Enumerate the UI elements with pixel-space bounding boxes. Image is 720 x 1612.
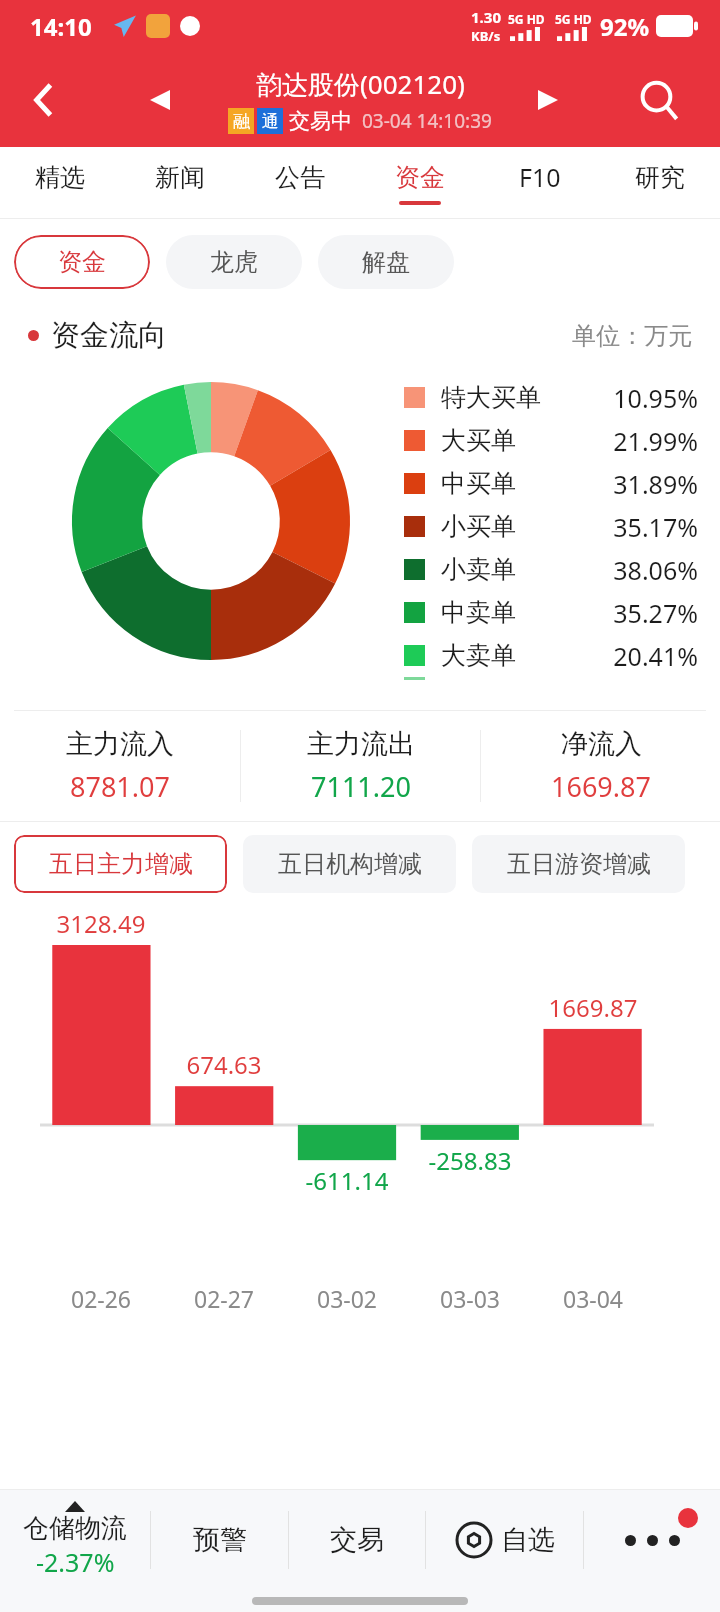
- staticText: 资金: [58, 247, 106, 277]
- staticText: 7111.20: [311, 768, 411, 805]
- button[interactable]: 特大卖单: [404, 677, 698, 680]
- staticText: 中卖单: [441, 597, 576, 628]
- staticText: 31.89%: [576, 467, 698, 501]
- staticText: 03-04: [518, 1283, 668, 1314]
- button[interactable]: 解盘: [318, 235, 454, 289]
- staticText: 1669.87: [551, 768, 651, 805]
- button[interactable]: 大卖单: [404, 634, 698, 677]
- staticText: 特大买单: [441, 382, 576, 413]
- staticText: 21.99%: [576, 424, 698, 458]
- staticText: 35.17%: [576, 510, 698, 544]
- staticText: 1.30: [471, 7, 501, 27]
- button[interactable]: 五日主力增减: [14, 835, 227, 893]
- button[interactable]: 自选: [426, 1490, 583, 1590]
- button[interactable]: 资金: [14, 235, 150, 289]
- staticText: 主力流出: [307, 727, 415, 761]
- button[interactable]: More: [584, 1490, 720, 1590]
- staticText: 20.41%: [576, 639, 698, 673]
- staticText: 大卖单: [441, 640, 576, 671]
- button[interactable]: 五日机构增减: [243, 835, 456, 893]
- button[interactable]: 五日游资增减: [472, 835, 685, 893]
- staticText: 03-02: [272, 1283, 422, 1314]
- button[interactable]: 新闻: [120, 147, 240, 219]
- staticText: 交易: [330, 1523, 384, 1557]
- staticText: 674.63: [149, 1048, 299, 1081]
- staticText: 03-04 14:10:39: [362, 108, 492, 134]
- button[interactable]: 中卖单: [404, 591, 698, 634]
- staticText: -611.14: [272, 1164, 422, 1197]
- staticText: 92%: [600, 10, 650, 43]
- staticText: 解盘: [362, 247, 410, 277]
- staticText: 主力流入: [66, 727, 174, 761]
- button[interactable]: 主力流出: [241, 711, 480, 821]
- staticText: 38.06%: [576, 553, 698, 587]
- staticText: 融: [233, 111, 250, 132]
- staticText: 五日机构增减: [278, 849, 422, 879]
- staticText: 35.27%: [576, 596, 698, 630]
- staticText: 五日游资增减: [507, 849, 651, 879]
- staticText: 韵达股份(002120): [256, 66, 465, 102]
- staticText: 8781.07: [70, 768, 170, 805]
- button[interactable]: Back: [30, 85, 60, 115]
- staticText: 五日主力增减: [49, 849, 193, 879]
- button[interactable]: 研究: [600, 147, 720, 219]
- button[interactable]: Next stock: [538, 90, 558, 110]
- staticText: 03-03: [395, 1283, 545, 1314]
- button[interactable]: 龙虎: [166, 235, 302, 289]
- button[interactable]: 中买单: [404, 462, 698, 505]
- staticText: 5G HD: [508, 11, 545, 27]
- button[interactable]: Previous stock: [150, 90, 170, 110]
- button[interactable]: Search: [638, 79, 680, 121]
- staticText: 3128.49: [26, 907, 176, 940]
- button[interactable]: 资金: [360, 147, 480, 219]
- button[interactable]: 主力流入: [0, 711, 240, 821]
- staticText: 10.95%: [576, 381, 698, 415]
- button[interactable]: 特大买单: [404, 376, 698, 419]
- button[interactable]: 交易: [289, 1490, 425, 1590]
- staticText: 龙虎: [210, 247, 258, 277]
- staticText: 研究: [635, 162, 685, 193]
- staticText: 02-27: [149, 1283, 299, 1314]
- staticText: 净流入: [561, 727, 642, 761]
- staticText: 14:10: [30, 10, 92, 43]
- staticText: 中买单: [441, 468, 576, 499]
- staticText: -2.37%: [36, 1545, 115, 1579]
- button[interactable]: 净流入: [481, 711, 720, 821]
- staticText: 仓储物流: [23, 1512, 127, 1545]
- button[interactable]: 公告: [240, 147, 360, 219]
- button[interactable]: 小卖单: [404, 548, 698, 591]
- button[interactable]: 小买单: [404, 505, 698, 548]
- staticText: 通: [262, 111, 279, 132]
- staticText: KB/s: [471, 27, 501, 45]
- button[interactable]: 预警: [151, 1490, 288, 1590]
- staticText: 小买单: [441, 511, 576, 542]
- staticText: 单位：万元: [572, 321, 692, 351]
- staticText: F10: [519, 160, 561, 194]
- button[interactable]: 精选: [0, 147, 120, 219]
- staticText: 资金: [395, 162, 445, 193]
- button[interactable]: 大买单: [404, 419, 698, 462]
- staticText: 精选: [35, 162, 85, 193]
- staticText: 1669.87: [518, 991, 668, 1024]
- staticText: -258.83: [395, 1144, 545, 1177]
- button[interactable]: 仓储物流: [0, 1490, 150, 1590]
- staticText: 资金流向: [51, 317, 167, 354]
- staticText: 预警: [193, 1523, 247, 1557]
- staticText: 自选: [501, 1523, 555, 1557]
- staticText: 大买单: [441, 425, 576, 456]
- staticText: 5G HD: [555, 11, 592, 27]
- staticText: 02-26: [26, 1283, 176, 1314]
- staticText: 新闻: [155, 162, 205, 193]
- staticText: 交易中: [289, 108, 352, 134]
- staticText: 公告: [275, 162, 325, 193]
- staticText: 小卖单: [441, 554, 576, 585]
- button[interactable]: F10: [480, 147, 600, 219]
